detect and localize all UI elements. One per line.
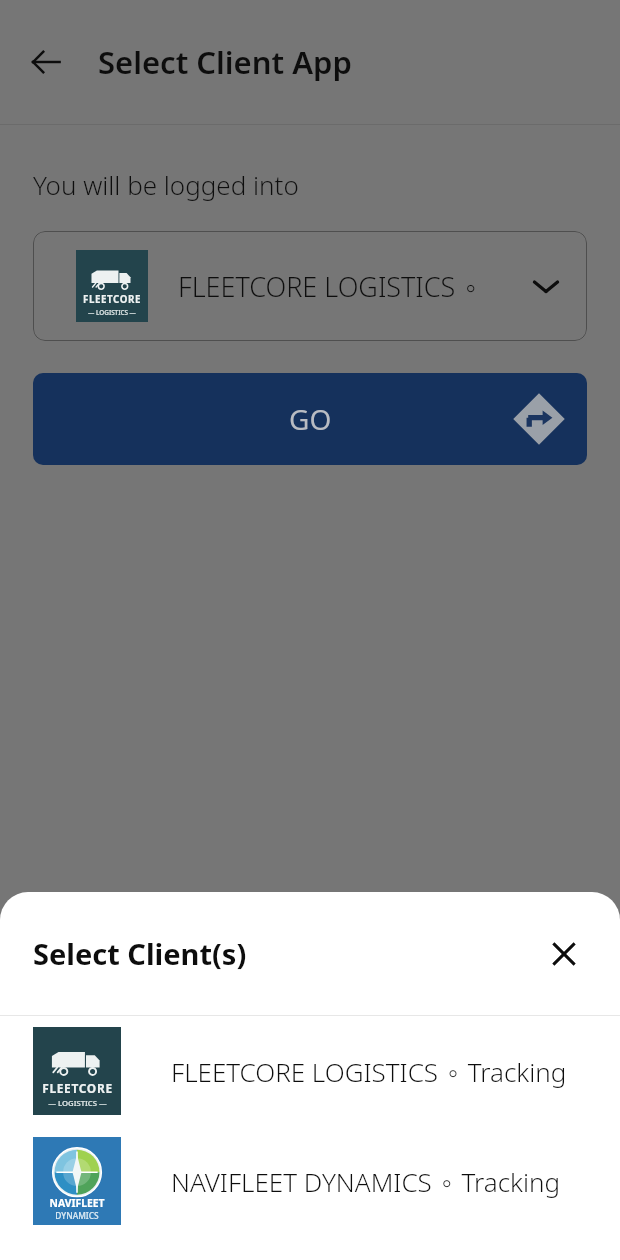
staticText: FLEETCORE LOGISTICS ∘ Tracking [178,268,529,305]
button[interactable]: FLEETCORE [0,1016,620,1126]
button[interactable]: GO [33,373,587,465]
staticText: — LOGISTICS — [48,1098,107,1109]
staticText: FLEETCORE LOGISTICS ∘ Tracking [171,1054,567,1089]
staticText: NAVIFLEET [49,1196,105,1210]
button[interactable]: Close [541,931,587,977]
staticText: DYNAMICS [55,1210,99,1221]
button[interactable]: NAVIFLEET [0,1126,620,1236]
staticText: Select Client(s) [33,934,541,973]
staticText: Select Client App [98,41,352,83]
staticText: — LOGISTICS — [88,308,136,317]
staticText: FLEETCORE [42,1080,113,1096]
staticText: FLEETCORE [83,293,141,306]
staticText: NAVIFLEET DYNAMICS ∘ Tracking [171,1164,561,1199]
button[interactable]: FLEETCORE [33,231,587,341]
staticText: You will be logged into [33,167,299,202]
button[interactable]: Back [16,32,76,92]
staticText: GO [289,400,332,438]
